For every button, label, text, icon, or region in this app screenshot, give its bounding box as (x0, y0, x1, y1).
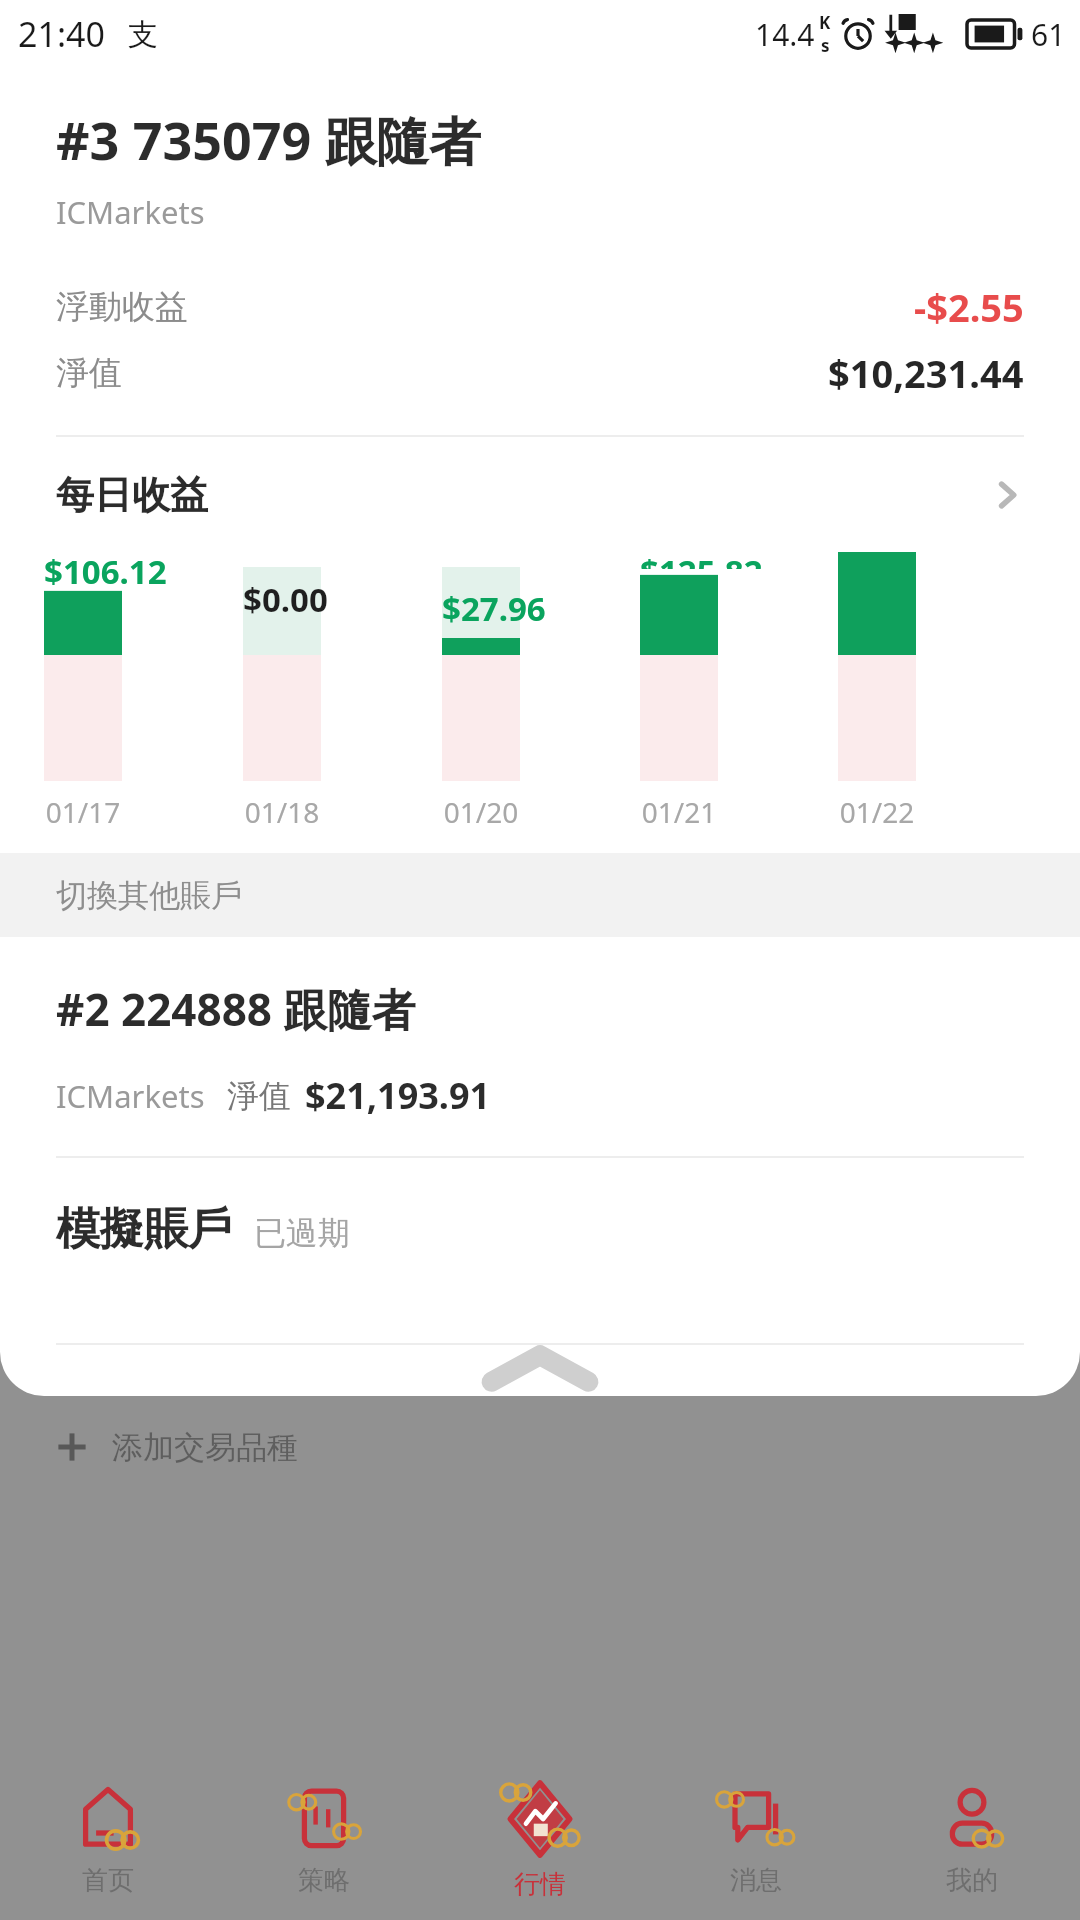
staticText: $0.00 (243, 577, 328, 622)
staticText: 已過期 (254, 1213, 350, 1253)
staticText: 淨值 (227, 1076, 291, 1116)
button[interactable]: 消息 (648, 1760, 864, 1920)
staticText: 14.4 (755, 14, 815, 55)
staticText: $10,231.44 (828, 347, 1024, 399)
staticText: 21:40 (18, 11, 105, 57)
button[interactable]: #2 224888 跟隨者 (0, 937, 1080, 1158)
button[interactable]: 模擬賬戶 (0, 1158, 1080, 1345)
staticText: 浮動收益 (56, 286, 188, 328)
staticText: $125.82 (640, 549, 763, 569)
staticText: 策略 (298, 1864, 350, 1897)
staticText: $27.96 (442, 586, 546, 631)
staticText: 添加交易品種 (112, 1428, 298, 1467)
button[interactable]: 我的 (864, 1760, 1080, 1920)
button[interactable]: 行情 (432, 1760, 648, 1920)
staticText: 01/22 (838, 793, 916, 831)
staticText: 淨值 (56, 352, 122, 394)
staticText: #2 224888 跟隨者 (56, 979, 416, 1039)
staticText: $106.12 (44, 549, 167, 585)
button[interactable]: 切換其他賬戶 (0, 853, 1080, 937)
staticText: 行情 (514, 1868, 566, 1901)
staticText: s (821, 34, 830, 57)
staticText: -$2.55 (914, 281, 1024, 333)
button[interactable]: Collapse (0, 1345, 1080, 1396)
staticText: 切換其他賬戶 (56, 876, 242, 915)
button[interactable]: 策略 (216, 1760, 432, 1920)
staticText: $21,193.91 (305, 1071, 491, 1120)
staticText: ICMarkets (56, 1075, 205, 1117)
staticText: 消息 (730, 1864, 782, 1897)
button[interactable]: 每日收益 (0, 467, 1080, 523)
button[interactable]: 首页 (0, 1760, 216, 1920)
staticText: K (819, 11, 831, 34)
staticText: 01/21 (640, 793, 718, 831)
staticText: 支 (128, 16, 158, 54)
staticText: 61 (1031, 14, 1066, 55)
staticText: #3 735079 跟隨者 (56, 104, 481, 175)
staticText: 01/18 (243, 793, 321, 831)
staticText: 01/17 (44, 793, 122, 831)
staticText: 每日收益 (56, 471, 208, 519)
staticText: 01/20 (442, 793, 520, 831)
staticText: 模擬賬戶 (56, 1202, 232, 1257)
staticText: 首页 (82, 1864, 134, 1897)
staticText: ICMarkets (56, 191, 205, 233)
staticText: 我的 (946, 1864, 998, 1897)
